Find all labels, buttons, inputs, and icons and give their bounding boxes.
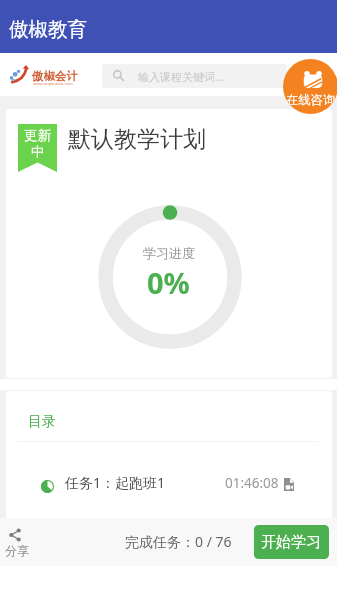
button[interactable]: 任务1：起跑班1 [5,460,333,513]
staticText: 在线咨询 [286,92,336,107]
staticText: www.aojiaoedu.com [33,81,73,87]
staticText: 傲椒教育 [9,17,87,42]
staticText: 中 [31,143,45,160]
staticText: 分享 [5,543,29,558]
staticText: 目录 [28,413,56,431]
staticText: 更新 [24,127,51,144]
staticText: 01:46:08 [225,474,279,492]
staticText: 默认教学计划 [68,125,206,154]
staticText: 学习进度 [143,245,195,261]
button[interactable]: 分享 [0,518,33,566]
staticText: 任务1：起跑班1 [65,473,166,492]
staticText: 输入课程关键词... [138,69,224,84]
button[interactable]: 在线咨询 [283,59,337,114]
staticText: 0% [147,263,190,302]
button[interactable]: 输入课程关键词... [102,64,287,88]
staticText: 完成任务：0 / 76 [125,532,232,551]
staticText: 傲椒会计 [32,69,78,83]
staticText: 开始学习 [261,533,321,552]
button[interactable]: 更新 [5,108,333,379]
button[interactable]: 开始学习 [254,525,329,559]
